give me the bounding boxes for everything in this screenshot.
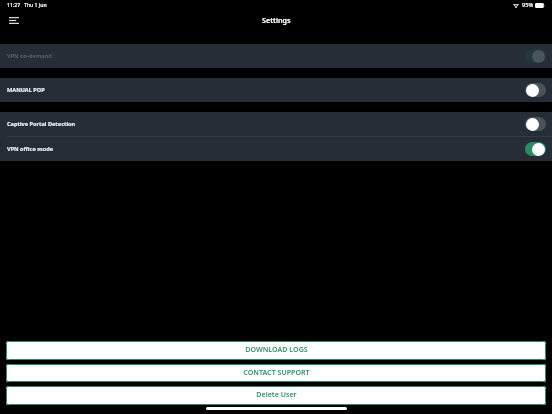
staticText: Settings (262, 15, 291, 25)
staticText: DOWNLOAD LOGS (245, 344, 308, 354)
staticText: VPN on-demand (7, 52, 52, 60)
staticText: MANUAL POP (7, 86, 45, 94)
button[interactable]: Toggle VPN office mode (525, 142, 546, 156)
staticText: 11:27 (7, 2, 21, 9)
button[interactable]: VPN office mode (0, 137, 552, 161)
staticText: Thu 1 Jun (24, 2, 47, 9)
button[interactable]: Toggle VPN on-demand (525, 49, 546, 63)
staticText: 95% (522, 1, 534, 9)
button[interactable]: Menu (5, 11, 23, 29)
button[interactable]: Captive Portal Detection (0, 112, 552, 136)
button[interactable]: VPN on-demand (0, 44, 552, 68)
staticText: VPN office mode (7, 145, 54, 153)
button[interactable]: CONTACT SUPPORT (6, 364, 546, 382)
staticText: Delete User (256, 389, 297, 399)
button[interactable]: MANUAL POP (0, 78, 552, 102)
staticText: Captive Portal Detection (7, 120, 76, 128)
button[interactable]: Toggle MANUAL POP (525, 83, 546, 97)
button[interactable]: Toggle Captive Portal Detection (525, 117, 546, 131)
button[interactable]: DOWNLOAD LOGS (6, 341, 546, 360)
staticText: CONTACT SUPPORT (243, 367, 310, 377)
button[interactable]: Delete User (6, 386, 546, 405)
